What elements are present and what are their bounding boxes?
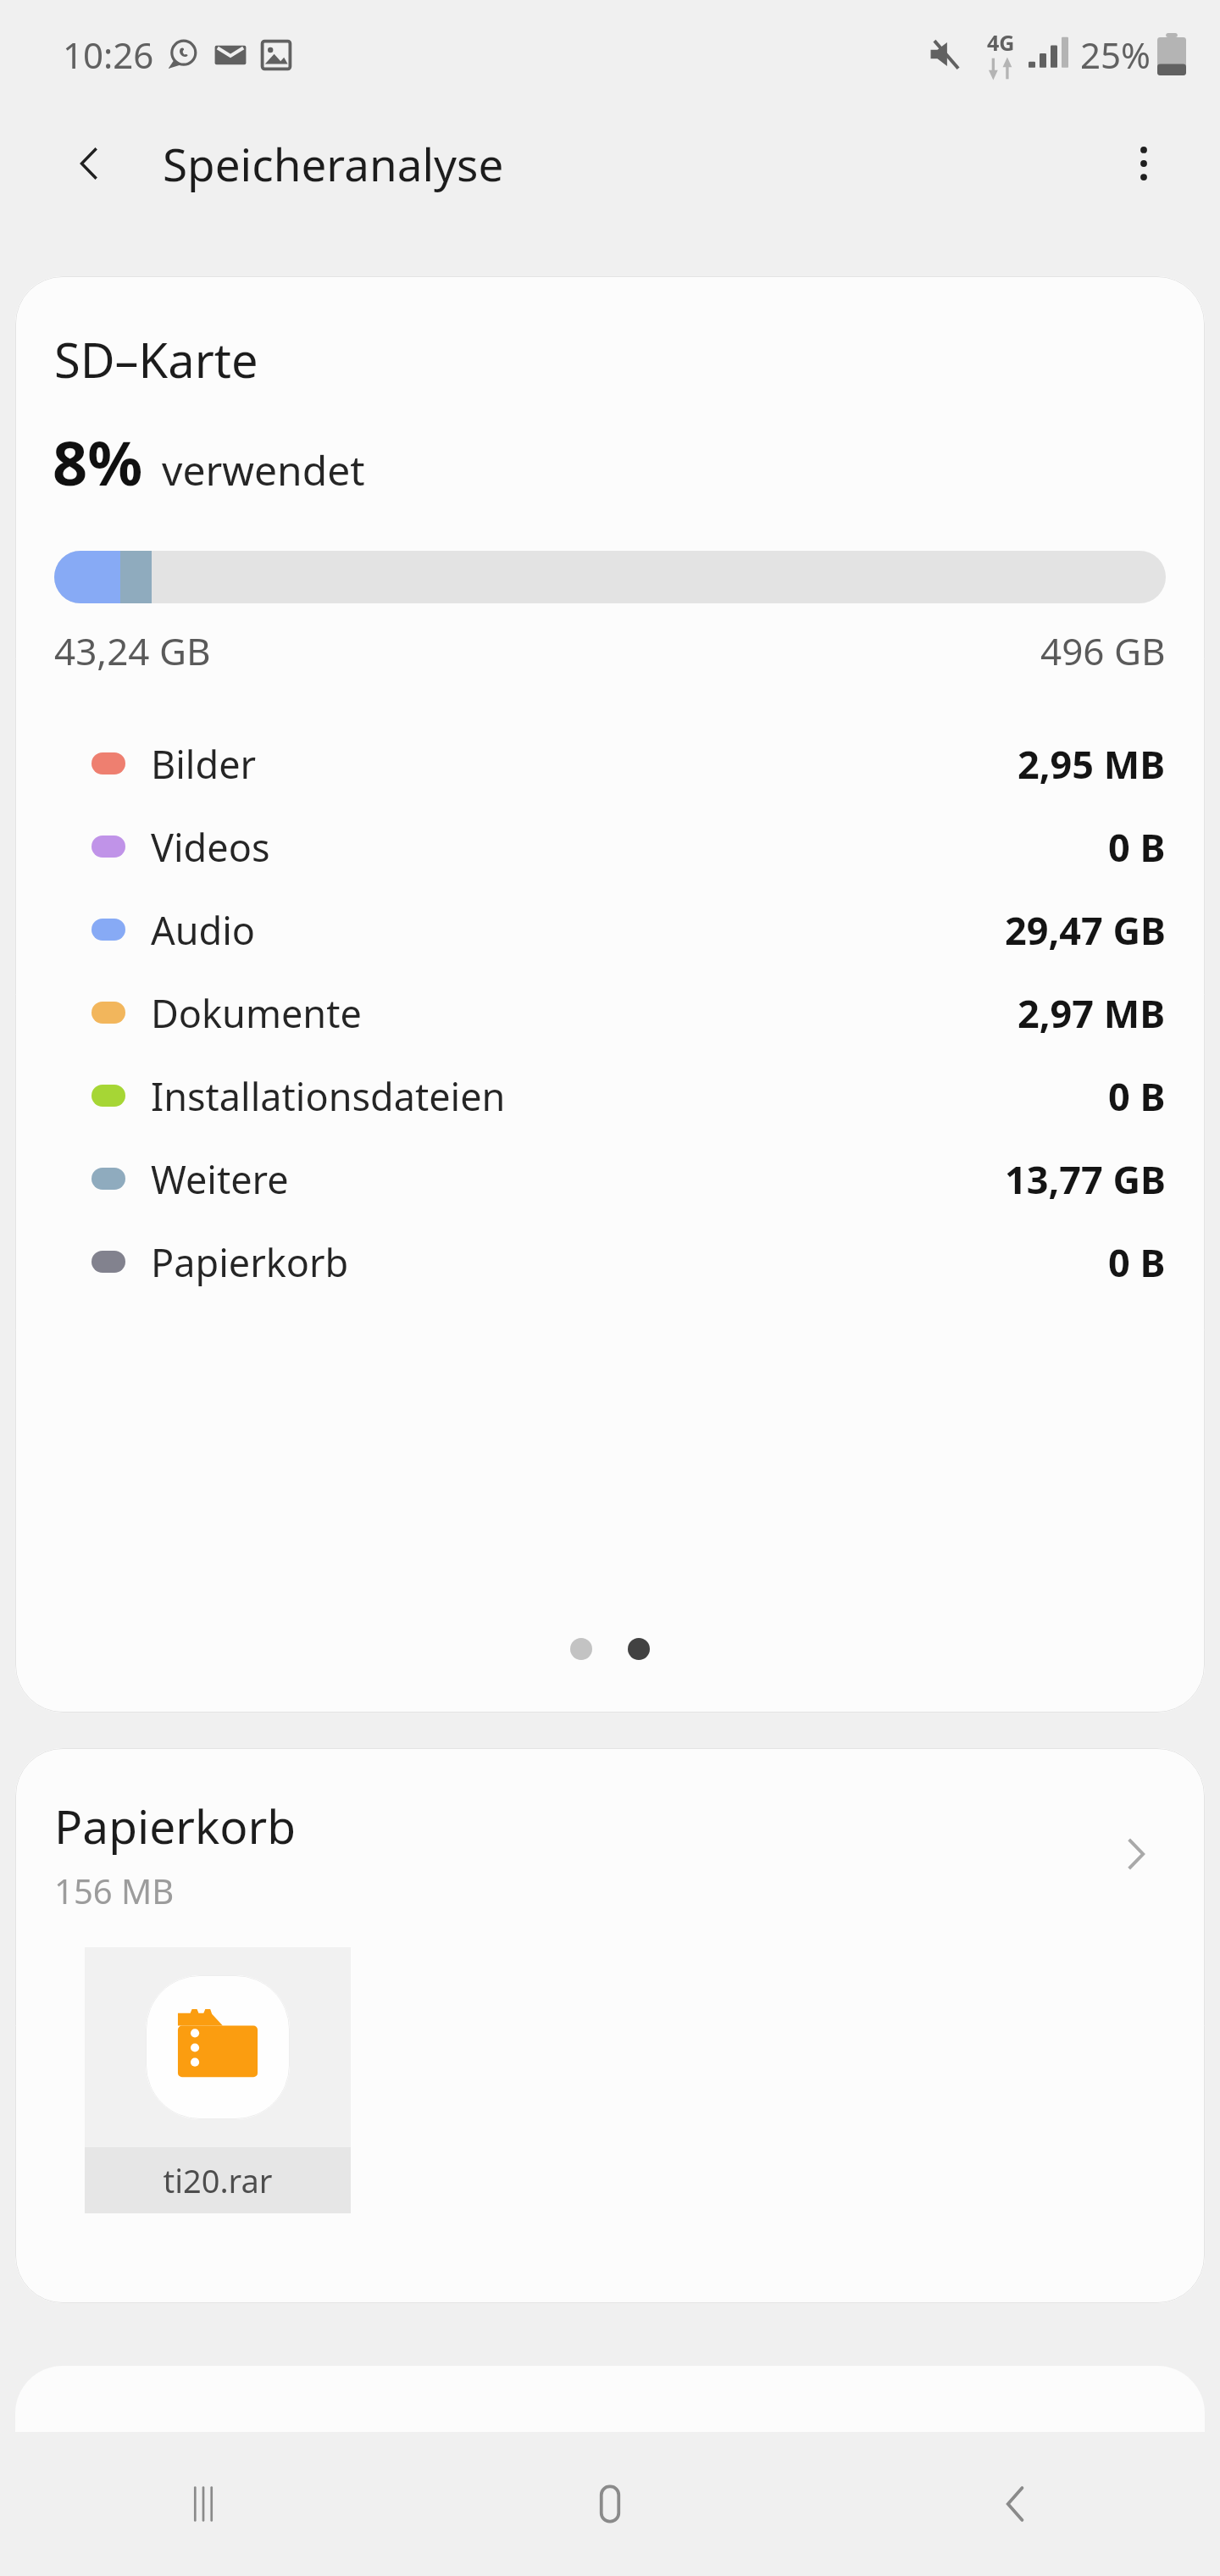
button[interactable]: Back <box>53 126 127 201</box>
staticText: Audio <box>151 904 256 956</box>
staticText: 0 B <box>1108 1236 1166 1288</box>
staticText: ti20.rar <box>163 2158 273 2202</box>
staticText: Speicheranalyse <box>163 133 504 194</box>
button[interactable]: Recent apps <box>0 2432 407 2576</box>
button[interactable]: SD–Karte <box>15 276 1205 1713</box>
staticText: 2,95 MB <box>1018 738 1166 790</box>
staticText: 156 MB <box>54 1868 175 1913</box>
button[interactable]: Audio <box>15 888 1205 971</box>
button[interactable]: Page 1 <box>570 1638 592 1660</box>
button[interactable]: Home <box>407 2432 813 2576</box>
staticText: Papierkorb <box>151 1236 349 1288</box>
staticText: 8% <box>53 420 143 503</box>
button[interactable]: Installationsdateien <box>15 1054 1205 1137</box>
staticText: 496 GB <box>1040 625 1166 676</box>
staticText: Videos <box>151 821 270 873</box>
button[interactable]: Back <box>813 2432 1220 2576</box>
staticText: SD–Karte <box>54 327 258 391</box>
staticText: 43,24 GB <box>54 625 211 676</box>
staticText: 0 B <box>1108 1070 1166 1122</box>
staticText: 29,47 GB <box>1005 904 1166 956</box>
button[interactable]: Weitere <box>15 1137 1205 1220</box>
button[interactable]: More options <box>1106 126 1181 201</box>
staticText: 0 B <box>1108 821 1166 873</box>
button[interactable]: ti20.rar <box>85 1947 351 2213</box>
staticText: verwendet <box>162 442 365 497</box>
staticText: 10:26 <box>63 31 154 79</box>
staticText: Weitere <box>151 1153 289 1205</box>
button[interactable]: Page 2 <box>628 1638 650 1660</box>
staticText: 25% <box>1080 31 1151 79</box>
button[interactable]: Papierkorb <box>15 1748 1205 2303</box>
staticText: Bilder <box>151 738 257 790</box>
staticText: 13,77 GB <box>1005 1153 1166 1205</box>
staticText: 4G <box>987 28 1015 57</box>
button[interactable]: Papierkorb <box>15 1220 1205 1303</box>
staticText: 2,97 MB <box>1018 987 1166 1039</box>
staticText: Papierkorb <box>54 1794 297 1857</box>
button[interactable]: Open Papierkorb <box>1101 1820 1169 1888</box>
button[interactable]: Dokumente <box>15 971 1205 1054</box>
button[interactable]: Bilder <box>15 722 1205 805</box>
staticText: Dokumente <box>151 987 362 1039</box>
button[interactable] <box>15 2366 1205 2468</box>
button[interactable]: Videos <box>15 805 1205 888</box>
staticText: Installationsdateien <box>151 1070 506 1122</box>
